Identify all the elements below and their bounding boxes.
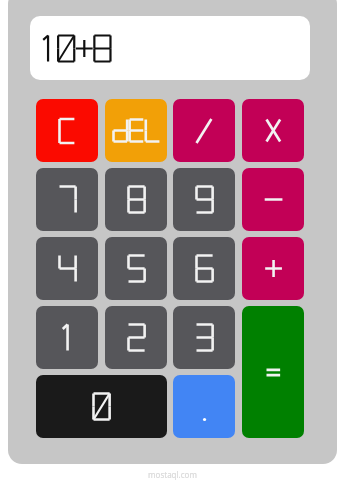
- button[interactable]: Equals: [242, 306, 304, 438]
- button[interactable]: One: [36, 306, 98, 369]
- button[interactable]: Decimal point: [173, 375, 235, 438]
- button[interactable]: Clear: [36, 99, 98, 162]
- button[interactable]: Delete: [105, 99, 167, 162]
- staticText: mostaql.com: [148, 469, 197, 480]
- button[interactable]: Seven: [36, 168, 98, 231]
- button[interactable]: Three: [173, 306, 235, 369]
- button[interactable]: Six: [173, 237, 235, 300]
- button[interactable]: Five: [105, 237, 167, 300]
- button[interactable]: Divide: [173, 99, 235, 162]
- button[interactable]: Eight: [105, 168, 167, 231]
- button[interactable]: Four: [36, 237, 98, 300]
- button[interactable]: Two: [105, 306, 167, 369]
- button[interactable]: Plus: [242, 237, 304, 300]
- button[interactable]: Multiply: [242, 99, 304, 162]
- button[interactable]: Nine: [173, 168, 235, 231]
- button[interactable]: Minus: [242, 168, 304, 231]
- button[interactable]: Zero: [36, 375, 167, 438]
